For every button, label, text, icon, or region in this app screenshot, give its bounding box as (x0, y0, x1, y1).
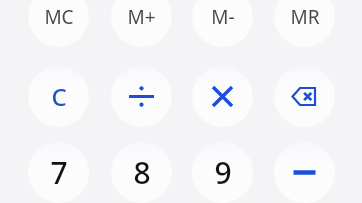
button[interactable]: Multiply (192, 66, 253, 127)
button[interactable]: M- (192, 0, 253, 47)
staticText: 9 (214, 152, 232, 193)
button[interactable]: 7 (28, 142, 89, 203)
staticText: M- (211, 4, 235, 30)
staticText: MC (44, 4, 74, 30)
staticText: M+ (127, 4, 156, 30)
button[interactable]: MC (28, 0, 89, 47)
button[interactable]: Divide (111, 66, 172, 127)
button[interactable]: C (28, 66, 89, 127)
button[interactable]: MR (274, 0, 335, 47)
button[interactable]: 8 (111, 142, 172, 203)
button[interactable]: 9 (192, 142, 253, 203)
button[interactable]: Backspace (274, 66, 335, 127)
staticText: MR (290, 4, 320, 30)
button[interactable]: M+ (111, 0, 172, 47)
staticText: C (51, 80, 67, 113)
button[interactable]: Minus (274, 142, 335, 203)
staticText: 8 (133, 152, 151, 193)
staticText: 7 (50, 152, 68, 193)
